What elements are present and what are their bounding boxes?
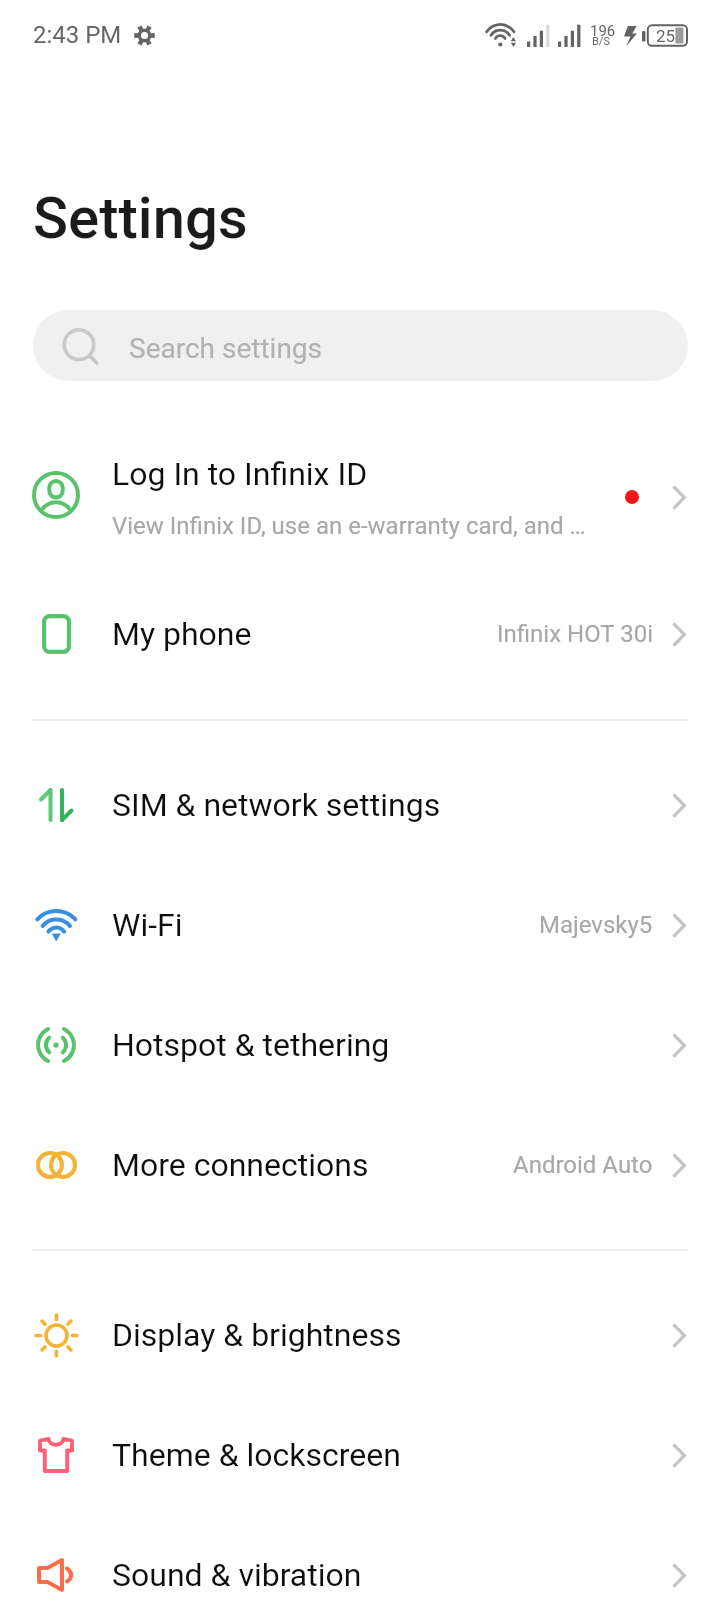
staticText: Majevsky5: [539, 911, 653, 939]
button[interactable]: Theme & lockscreen: [0, 1395, 720, 1515]
staticText: Settings: [33, 184, 248, 252]
button[interactable]: Wi-Fi: [0, 865, 720, 985]
button[interactable]: Display & brightness: [0, 1275, 720, 1395]
other: Settings shortcut: [134, 25, 155, 46]
staticText: 2:43 PM: [33, 21, 122, 49]
staticText: Display & brightness: [112, 1316, 402, 1354]
button[interactable]: More connections: [0, 1105, 720, 1225]
staticText: Hotspot & tethering: [112, 1026, 390, 1064]
button[interactable]: SIM & network settings: [0, 745, 720, 865]
staticText: My phone: [112, 615, 252, 653]
staticText: Log In to Infinix ID: [112, 455, 368, 493]
staticText: Sound & vibration: [112, 1556, 362, 1594]
button[interactable]: Search settings: [33, 310, 688, 381]
staticText: More connections: [112, 1146, 369, 1184]
button[interactable]: Log In to Infinix ID: [0, 423, 720, 571]
staticText: SIM & network settings: [112, 786, 441, 824]
staticText: View Infinix ID, use an e-warranty card,…: [112, 512, 586, 540]
staticText: Wi-Fi: [112, 906, 183, 944]
staticText: Search settings: [129, 332, 323, 365]
staticText: Android Auto: [513, 1151, 653, 1179]
staticText: Theme & lockscreen: [112, 1436, 401, 1474]
button[interactable]: My phone: [0, 574, 720, 694]
staticText: Infinix HOT 30i: [497, 620, 653, 648]
staticText: B/S: [592, 35, 610, 48]
button[interactable]: Hotspot & tethering: [0, 985, 720, 1105]
staticText: 25: [656, 26, 676, 46]
staticText: 196: [590, 22, 616, 40]
button[interactable]: Sound & vibration: [0, 1515, 720, 1611]
